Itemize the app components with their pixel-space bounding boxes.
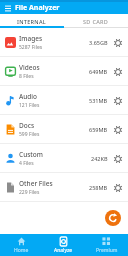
- staticText: Custom: [19, 150, 43, 159]
- button[interactable]: [113, 96, 123, 106]
- staticText: 8 Files: [19, 73, 34, 80]
- staticText: Home: [14, 247, 29, 254]
- staticText: File Analyzer: [15, 3, 60, 13]
- staticText: 5287 Files: [19, 44, 43, 51]
- button[interactable]: Analyze: [42, 234, 85, 256]
- button[interactable]: [113, 38, 123, 48]
- button[interactable]: INTERNAL: [0, 14, 64, 28]
- staticText: Docs: [19, 121, 35, 130]
- staticText: SD CARD: [83, 18, 109, 25]
- button[interactable]: [113, 125, 123, 135]
- staticText: 649MB: [89, 68, 108, 75]
- button[interactable]: [5, 5, 11, 12]
- button[interactable]: SD CARD: [64, 14, 128, 28]
- staticText: Audio: [19, 92, 38, 101]
- staticText: Images: [19, 34, 43, 43]
- staticText: 531MB: [89, 97, 108, 104]
- button[interactable]: Home: [0, 234, 42, 256]
- staticText: 121 Files: [19, 102, 40, 109]
- button[interactable]: Images: [0, 28, 128, 57]
- staticText: Analyze: [54, 247, 73, 254]
- staticText: INTERNAL: [17, 18, 47, 25]
- staticText: Premium: [96, 247, 118, 254]
- staticText: 258MB: [89, 184, 108, 191]
- button[interactable]: Other Files: [0, 173, 128, 202]
- staticText: Other Files: [19, 179, 53, 188]
- button[interactable]: [105, 210, 121, 226]
- staticText: 4 Files: [19, 160, 34, 167]
- button[interactable]: Audio: [0, 86, 128, 115]
- button[interactable]: [113, 67, 123, 77]
- button[interactable]: Custom: [0, 144, 128, 173]
- button[interactable]: Videos: [0, 57, 128, 86]
- staticText: 242KB: [91, 155, 108, 162]
- button[interactable]: Premium: [85, 234, 128, 256]
- staticText: 3.65GB: [89, 39, 108, 46]
- button[interactable]: Docs: [0, 115, 128, 144]
- staticText: 229 Files: [19, 189, 40, 196]
- staticText: 599 Files: [19, 131, 40, 138]
- staticText: Videos: [19, 63, 40, 72]
- staticText: 659MB: [89, 126, 108, 133]
- button[interactable]: [113, 183, 123, 193]
- button[interactable]: [113, 154, 123, 164]
